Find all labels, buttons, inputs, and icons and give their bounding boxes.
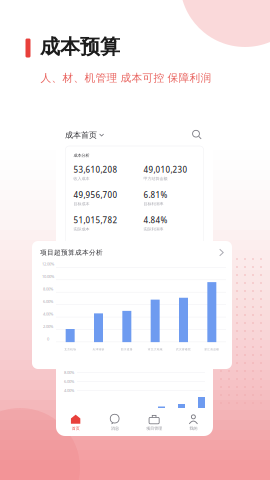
staticText: 6.00% — [43, 299, 53, 304]
staticText: 浙江高品楼 — [204, 348, 219, 351]
button[interactable]: 搜索 — [191, 128, 204, 142]
staticText: 4.00% — [43, 311, 53, 317]
staticText: 目标成本 — [73, 201, 89, 206]
staticText: 6.00% — [64, 379, 74, 384]
staticText: 我的 — [189, 426, 197, 431]
staticText: 武汉群楼院 — [176, 348, 191, 351]
staticText: 53,610,208 — [73, 240, 117, 251]
staticText: 实际利润率 — [143, 227, 163, 232]
staticText: 53,610,208 — [73, 164, 117, 175]
staticText: 0 — [47, 336, 49, 342]
staticText: 项目超预算成本分析 — [40, 248, 103, 257]
staticText: 实际成本 — [73, 227, 89, 232]
staticText: 49,956,700 — [73, 190, 117, 200]
staticText: 4.84% — [143, 215, 167, 225]
staticText: 甲方结算金额 — [143, 176, 167, 181]
staticText: 8.00% — [64, 370, 74, 375]
staticText: 成本首页 — [65, 130, 97, 140]
staticText: 12.00% — [42, 261, 54, 267]
staticText: 51,015,782 — [73, 215, 117, 225]
staticText: 北京机场 — [64, 348, 76, 351]
staticText: 6.81% — [143, 190, 167, 200]
staticText: 目标利润率 — [143, 201, 163, 206]
staticText: 成本分析 — [73, 153, 89, 158]
staticText: 人、材、机管理 成本可控 保障利润 — [40, 71, 211, 85]
button[interactable]: 项目超预算成本分析 — [32, 241, 232, 264]
staticText: 消息 — [111, 426, 119, 431]
staticText: 首页 — [72, 426, 80, 431]
staticText: 天津地铁 — [92, 348, 104, 351]
button[interactable]: 成本首页 — [65, 126, 104, 144]
staticText: 收入成本 — [73, 252, 89, 257]
staticText: 10.00% — [42, 274, 54, 279]
staticText: 8.00% — [43, 286, 53, 292]
button[interactable]: 消息 — [95, 409, 134, 436]
staticText: 成本预算 — [40, 34, 120, 59]
staticText: 项目管理 — [146, 426, 162, 431]
button[interactable]: 首页 — [56, 409, 95, 436]
staticText: 四川道路 — [121, 348, 133, 351]
staticText: 收入成本 — [73, 176, 89, 181]
staticText: 河北大地城 — [148, 348, 163, 351]
staticText: 2.00% — [43, 324, 53, 329]
button[interactable]: 项目管理 — [134, 409, 174, 436]
staticText: 49,010,230 — [143, 164, 187, 175]
staticText: 4.00% — [64, 388, 74, 393]
button[interactable]: 我的 — [174, 409, 213, 436]
